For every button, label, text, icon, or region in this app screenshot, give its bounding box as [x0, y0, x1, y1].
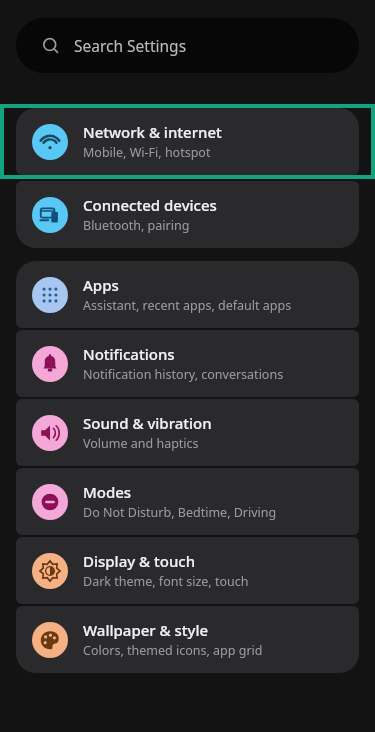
- staticText: Volume and haptics: [83, 435, 199, 452]
- staticText: Sound & vibration: [83, 413, 212, 433]
- staticText: Mobile, Wi-Fi, hotspot: [83, 144, 211, 161]
- button[interactable]: Notifications: [16, 330, 359, 397]
- staticText: Notifications: [83, 344, 175, 364]
- staticText: Notification history, conversations: [83, 366, 284, 383]
- staticText: Network & internet: [83, 122, 222, 142]
- staticText: Display & touch: [83, 551, 196, 571]
- staticText: Wallpaper & style: [83, 620, 209, 640]
- staticText: Apps: [83, 275, 119, 295]
- button[interactable]: Modes: [16, 468, 359, 535]
- staticText: Connected devices: [83, 195, 217, 215]
- button[interactable]: Sound & vibration: [16, 399, 359, 466]
- staticText: Modes: [83, 482, 132, 502]
- staticText: Bluetooth, pairing: [83, 217, 190, 234]
- staticText: Search Settings: [74, 35, 187, 56]
- button[interactable]: Wallpaper & style: [16, 606, 359, 673]
- button[interactable]: Search Settings: [16, 18, 359, 73]
- staticText: Colors, themed icons, app grid: [83, 642, 263, 659]
- button[interactable]: Network & internet: [16, 108, 359, 175]
- button[interactable]: Display & touch: [16, 537, 359, 604]
- staticText: Assistant, recent apps, default apps: [83, 297, 292, 314]
- staticText: Do Not Disturb, Bedtime, Driving: [83, 504, 277, 521]
- button[interactable]: Apps: [16, 261, 359, 328]
- staticText: Dark theme, font size, touch: [83, 573, 249, 590]
- button[interactable]: Connected devices: [16, 181, 359, 248]
